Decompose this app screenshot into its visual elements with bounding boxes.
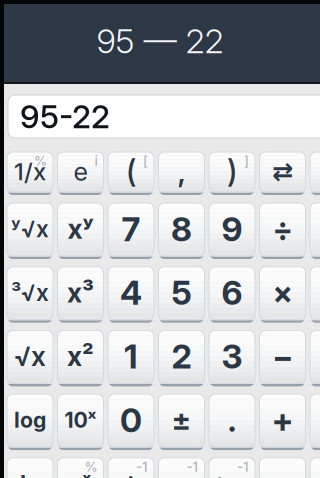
staticText: ʸ√x: [11, 215, 49, 243]
button[interactable]: comma: [158, 152, 204, 195]
staticText: -1: [136, 459, 148, 475]
staticText: .: [227, 401, 236, 439]
staticText: ×: [272, 274, 292, 311]
button[interactable]: y-th root of x: [7, 203, 53, 259]
staticText: 0: [120, 400, 142, 440]
button[interactable]: 2: [158, 330, 204, 386]
staticText: log: [14, 407, 46, 433]
staticText: 3: [221, 336, 242, 376]
button[interactable]: euler number: [310, 458, 320, 478]
staticText: ⌫: [318, 278, 320, 307]
staticText: 10ˣ: [64, 407, 96, 433]
staticText: 4: [120, 272, 142, 313]
staticText: 5: [171, 272, 191, 313]
staticText: ⇄: [272, 157, 293, 186]
button[interactable]: reciprocal: [7, 152, 53, 195]
staticText: +: [271, 400, 293, 440]
button[interactable]: x squared: [57, 330, 103, 386]
staticText: %: [84, 459, 97, 475]
button[interactable]: decimal point: [209, 394, 255, 450]
button[interactable]: 4: [108, 267, 154, 323]
staticText: 1/x: [14, 157, 46, 186]
staticText: ): [227, 153, 237, 190]
button[interactable]: plus or minus: [158, 394, 204, 450]
staticText: 7: [121, 209, 140, 249]
button[interactable]: clear: [310, 203, 320, 259]
staticText: ÷: [272, 210, 292, 247]
button[interactable]: square root of x: [7, 330, 53, 386]
button[interactable]: plus: [259, 394, 305, 450]
button[interactable]: 1: [108, 330, 154, 386]
button[interactable]: close bracket: [209, 152, 255, 195]
button[interactable]: natural logarithm: [7, 458, 53, 478]
staticText: 9: [221, 209, 242, 249]
button[interactable]: 6: [209, 267, 255, 323]
button[interactable]: multiply: [259, 267, 305, 323]
staticText: 1: [124, 336, 138, 376]
staticText: eˣ: [69, 470, 92, 478]
staticText: x²: [67, 340, 94, 373]
button[interactable]: e to the power x: [57, 458, 103, 478]
staticText: ]: [244, 153, 249, 169]
staticText: √x: [14, 340, 46, 373]
button[interactable]: divide: [259, 203, 305, 259]
staticText: 8: [171, 209, 192, 249]
button[interactable]: 8: [158, 203, 204, 259]
button[interactable]: cosine: [158, 458, 204, 478]
staticText: tan: [216, 472, 247, 478]
staticText: %: [34, 153, 47, 169]
button[interactable]: open bracket: [310, 330, 320, 386]
button[interactable]: ten to the power x: [57, 394, 103, 450]
button[interactable]: pi: [259, 458, 305, 478]
button[interactable]: delete: [310, 267, 320, 323]
staticText: e: [73, 156, 87, 187]
staticText: 95 — 22: [96, 21, 223, 61]
button[interactable]: cube root of x: [7, 267, 53, 323]
button[interactable]: base ten logarithm: [7, 394, 53, 450]
staticText: ,: [177, 154, 185, 189]
staticText: (: [126, 153, 136, 190]
button[interactable]: tangent: [209, 458, 255, 478]
staticText: 2: [171, 336, 191, 376]
staticText: x³: [67, 277, 94, 309]
staticText: i: [94, 153, 97, 169]
button[interactable]: sine: [108, 458, 154, 478]
button[interactable]: open bracket: [108, 152, 154, 195]
staticText: ln: [20, 470, 40, 478]
button[interactable]: 0: [108, 394, 154, 450]
button[interactable]: equals: [310, 152, 320, 195]
button[interactable]: e: [57, 152, 103, 195]
staticText: 6: [221, 272, 242, 313]
staticText: −: [272, 337, 293, 376]
staticText: -1: [186, 459, 198, 475]
button[interactable]: 5: [158, 267, 204, 323]
button[interactable]: minus: [259, 330, 305, 386]
button[interactable]: 7: [108, 203, 154, 259]
button[interactable]: close bracket: [310, 394, 320, 450]
button[interactable]: x cubed: [57, 267, 103, 323]
staticText: ³√x: [11, 279, 49, 306]
button[interactable]: swap operands: [259, 152, 305, 195]
staticText: -1: [237, 459, 249, 475]
staticText: 95-22: [20, 97, 110, 136]
staticText: sin: [117, 472, 145, 478]
staticText: [: [143, 153, 148, 169]
staticText: xʸ: [67, 213, 93, 245]
button[interactable]: 3: [209, 330, 255, 386]
button[interactable]: x to the power y: [57, 203, 103, 259]
button[interactable]: 9: [209, 203, 255, 259]
staticText: ±: [171, 402, 191, 438]
